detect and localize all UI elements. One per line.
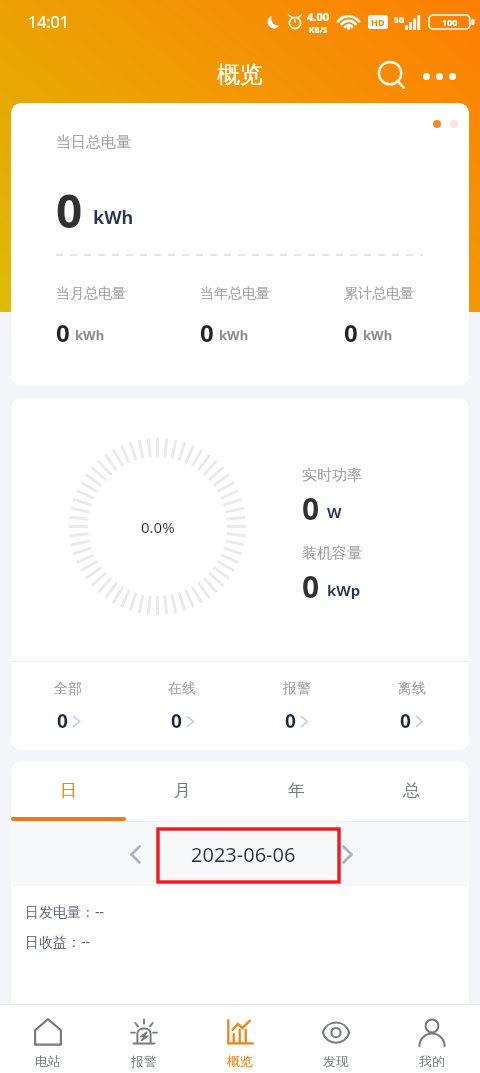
staticText: 报警 <box>131 1053 157 1069</box>
staticText: KB/S <box>309 24 328 35</box>
staticText: 报警 <box>283 680 311 698</box>
staticText: kWp <box>327 580 361 600</box>
staticText: 0 <box>56 179 83 242</box>
staticText: kWh <box>363 326 393 344</box>
staticText: 电站 <box>35 1053 61 1069</box>
button[interactable]: 2023-06-06 <box>188 838 298 870</box>
staticText: 日发电量：-- <box>25 902 105 921</box>
staticText: 0 <box>302 566 320 607</box>
button[interactable]: More options <box>417 56 461 96</box>
button[interactable]: Next day <box>332 839 362 869</box>
staticText: 0 <box>285 708 296 734</box>
staticText: HD <box>371 16 385 28</box>
button[interactable]: Search <box>372 56 412 96</box>
staticText: 我的 <box>419 1053 445 1069</box>
staticText: 发现 <box>323 1053 349 1069</box>
button[interactable]: 日 <box>11 761 125 822</box>
staticText: 2023-06-06 <box>191 841 296 868</box>
staticText: 概览 <box>217 60 263 89</box>
staticText: 100 <box>442 16 458 28</box>
staticText: 装机容量 <box>302 544 362 563</box>
staticText: 当年总电量 <box>200 285 270 303</box>
staticText: 在线 <box>168 680 196 698</box>
staticText: 累计总电量 <box>344 285 414 303</box>
staticText: 0 <box>171 708 182 734</box>
staticText: 当月总电量 <box>56 285 126 303</box>
staticText: 月 <box>174 780 191 801</box>
button[interactable]: 在线 <box>125 662 239 750</box>
staticText: 总 <box>403 780 420 801</box>
button[interactable]: 报警 <box>239 662 354 750</box>
staticText: 0 <box>400 708 411 734</box>
staticText: 0 <box>302 488 320 529</box>
button[interactable]: 电站 <box>0 1005 96 1073</box>
staticText: kWh <box>219 326 249 344</box>
staticText: 日收益：-- <box>25 932 91 951</box>
staticText: 年 <box>288 780 305 801</box>
button[interactable]: 年 <box>239 761 354 822</box>
staticText: 0 <box>56 316 70 349</box>
button[interactable]: 报警 <box>96 1005 192 1073</box>
staticText: kWh <box>75 326 105 344</box>
staticText: 0 <box>57 708 68 734</box>
staticText: 0 <box>200 316 214 349</box>
staticText: 0 <box>344 316 358 349</box>
staticText: 实时功率 <box>302 466 362 485</box>
staticText: 14:01 <box>28 11 69 33</box>
staticText: 当日总电量 <box>56 133 131 152</box>
button[interactable]: Previous day <box>120 839 150 869</box>
staticText: 0.0% <box>141 517 175 537</box>
button[interactable]: 离线 <box>354 662 469 750</box>
button[interactable]: 我的 <box>384 1005 480 1073</box>
staticText: 日 <box>60 780 77 801</box>
staticText: kWh <box>93 205 134 230</box>
staticText: 4.00 <box>307 9 329 24</box>
staticText: W <box>327 502 342 522</box>
staticText: 概览 <box>227 1053 253 1069</box>
button[interactable]: 发现 <box>288 1005 384 1073</box>
button[interactable]: 总 <box>354 761 469 822</box>
button[interactable]: 月 <box>125 761 239 822</box>
staticText: 全部 <box>54 680 82 698</box>
button[interactable]: 概览 <box>192 1005 288 1073</box>
staticText: 5G <box>394 14 405 25</box>
staticText: 离线 <box>398 680 426 698</box>
button[interactable]: 全部 <box>11 662 125 750</box>
